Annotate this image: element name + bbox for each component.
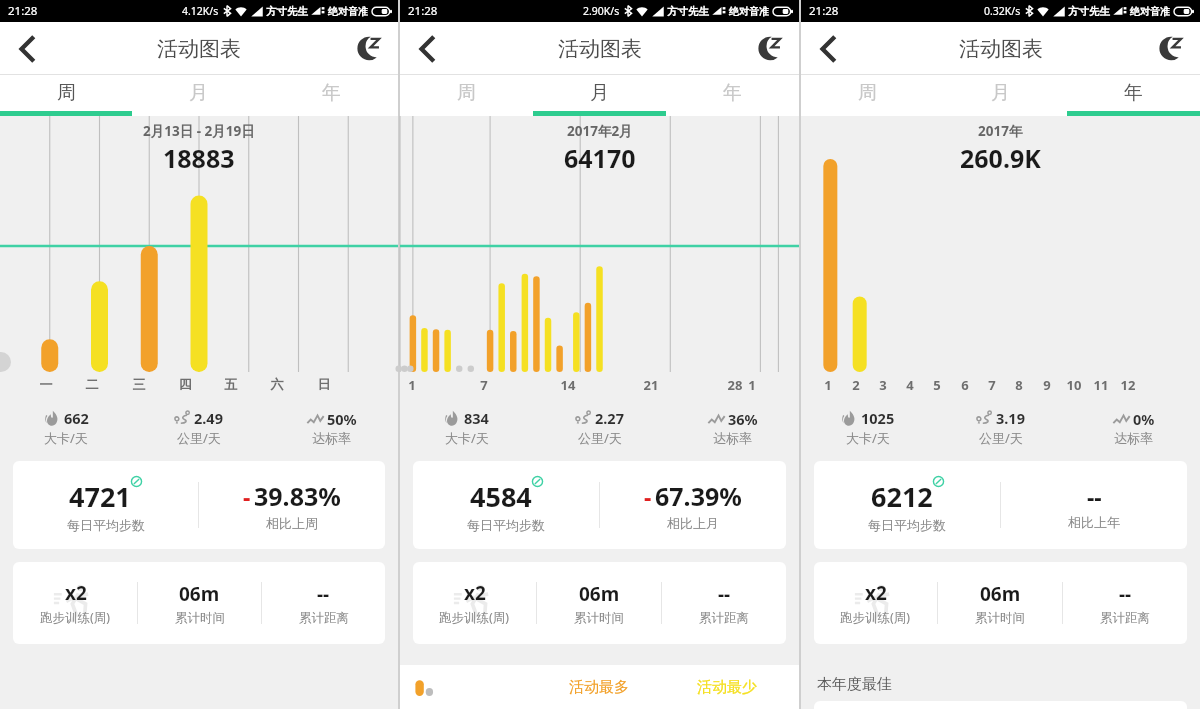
staticText: 周	[457, 81, 476, 105]
button[interactable]: 50%	[265, 402, 398, 452]
staticText: 2017年	[978, 122, 1023, 140]
button[interactable]: 年	[265, 75, 398, 116]
staticText: 六	[263, 376, 291, 392]
staticText: 年	[322, 81, 341, 105]
staticText: 相比上年	[1068, 514, 1120, 530]
button[interactable]: 0%	[1067, 402, 1200, 452]
staticText: --	[317, 581, 330, 607]
button[interactable]: 月	[934, 75, 1067, 116]
staticText: 11	[1087, 376, 1115, 394]
staticText: 06m	[980, 581, 1021, 607]
staticText: 跑步训练(周)	[40, 609, 111, 626]
button[interactable]: 返回	[807, 27, 851, 71]
staticText: -	[644, 481, 652, 512]
button[interactable]: 月	[132, 75, 265, 116]
staticText: 月	[991, 81, 1010, 105]
staticText: 达标率	[312, 430, 351, 446]
staticText: 累计距离	[699, 610, 749, 626]
staticText: 06m	[179, 581, 220, 607]
staticText: 2.49	[194, 408, 223, 428]
button[interactable]: 睡眠	[1150, 27, 1194, 71]
staticText: 绝对音准	[328, 5, 368, 18]
staticText: 67.39%	[655, 479, 742, 513]
button[interactable]: 周	[801, 75, 934, 116]
button[interactable]: 2.27	[533, 402, 666, 452]
staticText: 方寸先生	[1068, 5, 1110, 18]
button[interactable]: 活动最多	[535, 665, 663, 709]
button[interactable]: 睡眠	[348, 27, 392, 71]
staticText: 64170	[564, 141, 636, 175]
staticText: 年	[1124, 81, 1143, 105]
button[interactable]: 2.49	[132, 402, 265, 452]
staticText: 14	[554, 376, 582, 394]
staticText: 绝对音准	[1130, 5, 1170, 18]
staticText: 0%	[1133, 409, 1155, 429]
staticText: 累计距离	[1100, 610, 1150, 626]
staticText: 累计时间	[574, 610, 624, 626]
button[interactable]: 月	[533, 75, 666, 116]
staticText: 月	[590, 81, 609, 105]
button[interactable]: 返回	[6, 27, 50, 71]
button[interactable]: x2	[413, 562, 786, 644]
staticText: 21:28	[408, 3, 438, 19]
button[interactable]: x2	[814, 562, 1187, 644]
staticText: 每日平均步数	[67, 517, 145, 533]
staticText: 周	[858, 81, 877, 105]
button[interactable]: 活动最少	[663, 665, 791, 709]
staticText: 本年度最佳	[817, 675, 892, 694]
staticText: 21:28	[8, 3, 38, 19]
staticText: 月	[189, 81, 208, 105]
staticText: -	[243, 481, 251, 512]
button[interactable]: x2	[13, 562, 385, 644]
staticText: 2.90K/s	[583, 4, 620, 18]
staticText: --	[718, 581, 731, 607]
staticText: 相比上周	[266, 515, 318, 531]
staticText: 21:28	[809, 3, 839, 19]
button[interactable]: 3.19	[934, 402, 1067, 452]
button[interactable]: 返回	[406, 27, 450, 71]
staticText: 6212	[871, 478, 933, 515]
staticText: 跑步训练(周)	[439, 609, 510, 626]
button[interactable]: 睡眠	[749, 27, 793, 71]
button[interactable]: 年	[1067, 75, 1200, 116]
button[interactable]: 4584	[413, 461, 786, 549]
button[interactable]: 662	[0, 402, 132, 452]
staticText: 公里/天	[578, 429, 622, 447]
staticText: 7	[470, 376, 498, 394]
button[interactable]: 4721	[13, 461, 385, 549]
staticText: 活动最少	[697, 678, 757, 697]
staticText: 二	[78, 376, 106, 392]
staticText: 3.19	[996, 408, 1025, 428]
staticText: 12	[1114, 376, 1142, 394]
staticText: x2	[865, 580, 887, 606]
button[interactable]: 1025	[801, 402, 934, 452]
staticText: --	[1087, 481, 1102, 512]
staticText: 18883	[163, 141, 235, 175]
staticText: 1	[814, 376, 842, 394]
button[interactable]: 周	[0, 75, 132, 116]
staticText: 达标率	[713, 430, 752, 446]
staticText: 周	[57, 81, 76, 105]
button[interactable]: 36%	[666, 402, 799, 452]
staticText: 大卡/天	[44, 429, 88, 447]
staticText: 6	[951, 376, 979, 394]
staticText: 跑步训练(周)	[840, 609, 911, 626]
button[interactable]: 834	[400, 402, 533, 452]
staticText: 50%	[327, 409, 357, 429]
staticText: 2	[842, 376, 870, 394]
staticText: 日	[310, 376, 338, 392]
staticText: 2.27	[595, 408, 624, 428]
staticText: 四	[171, 376, 199, 392]
staticText: 2017年2月	[567, 122, 633, 140]
button[interactable]: 6212	[814, 461, 1187, 549]
staticText: 9	[1033, 376, 1061, 394]
button[interactable]: 周	[400, 75, 533, 116]
staticText: 公里/天	[177, 429, 221, 447]
staticText: 方寸先生	[266, 5, 308, 18]
button[interactable]: 年	[666, 75, 799, 116]
staticText: 累计时间	[175, 610, 225, 626]
staticText: 公里/天	[979, 429, 1023, 447]
staticText: 1	[398, 376, 426, 394]
staticText: 1	[738, 376, 766, 394]
staticText: 28	[721, 376, 749, 394]
